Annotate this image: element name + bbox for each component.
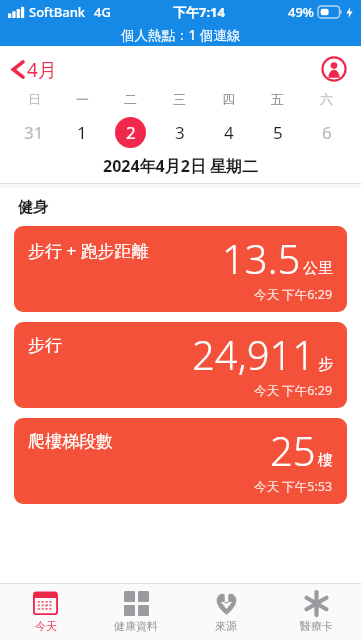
staticText: 13.5 <box>222 231 301 285</box>
staticText: 4G <box>94 3 111 21</box>
staticText: 健康資料 <box>114 619 158 633</box>
staticText: 步行 + 跑步距離 <box>28 239 149 262</box>
staticText: 2024年4月2日 星期二 <box>103 155 259 177</box>
staticText: 步行 <box>28 335 62 356</box>
staticText: 健身 <box>18 198 48 217</box>
staticText: 三 <box>173 91 186 107</box>
staticText: 5 <box>273 121 283 144</box>
staticText: 四 <box>222 91 235 107</box>
staticText: 今天 下午5:53 <box>254 478 333 495</box>
staticText: 1 <box>77 121 87 144</box>
staticText: 醫療卡 <box>300 619 333 633</box>
staticText: 五 <box>271 91 284 107</box>
button[interactable]: 醫療卡 <box>271 584 361 640</box>
staticText: SoftBank <box>29 3 86 21</box>
staticText: 來源 <box>215 619 237 633</box>
staticText: 六 <box>320 91 333 107</box>
staticText: 樓 <box>318 451 333 470</box>
button[interactable]: 步行 + 跑步距離 <box>14 226 347 312</box>
staticText: 日 <box>28 91 41 107</box>
staticText: 下午7:14 <box>173 3 225 21</box>
staticText: 4 <box>224 121 234 144</box>
button[interactable]: 5 <box>253 115 302 149</box>
button[interactable]: 今天 <box>0 584 91 640</box>
button[interactable]: 個人檔案 <box>321 56 347 82</box>
button[interactable]: 1 <box>58 115 106 149</box>
button[interactable]: 健康資料 <box>91 584 181 640</box>
button[interactable]: 4 <box>204 115 253 149</box>
staticText: 今天 下午6:29 <box>254 286 333 303</box>
button[interactable]: 6 <box>302 115 351 149</box>
staticText: 二 <box>124 91 137 107</box>
button[interactable]: 步行 <box>14 322 347 408</box>
button[interactable]: 4月 <box>8 53 61 85</box>
staticText: 49% <box>288 3 314 21</box>
staticText: 一 <box>76 91 89 107</box>
button[interactable]: 31 <box>10 115 58 149</box>
staticText: 31 <box>24 121 44 144</box>
staticText: 步 <box>318 355 333 374</box>
staticText: 2 <box>126 121 136 144</box>
staticText: 6 <box>322 121 332 144</box>
staticText: 今天 <box>35 619 57 633</box>
button[interactable]: 2 <box>106 115 155 149</box>
staticText: 3 <box>175 121 185 144</box>
button[interactable]: 來源 <box>181 584 271 640</box>
staticText: 今天 下午6:29 <box>254 382 333 399</box>
staticText: 25 <box>270 423 316 477</box>
staticText: 個人熱點：1 個連線 <box>121 26 241 44</box>
button[interactable]: 爬樓梯段數 <box>14 418 347 504</box>
staticText: 爬樓梯段數 <box>28 431 113 452</box>
staticText: 公里 <box>303 259 333 278</box>
button[interactable]: 3 <box>155 115 204 149</box>
staticText: 4月 <box>27 57 57 81</box>
staticText: 24,911 <box>192 327 316 381</box>
